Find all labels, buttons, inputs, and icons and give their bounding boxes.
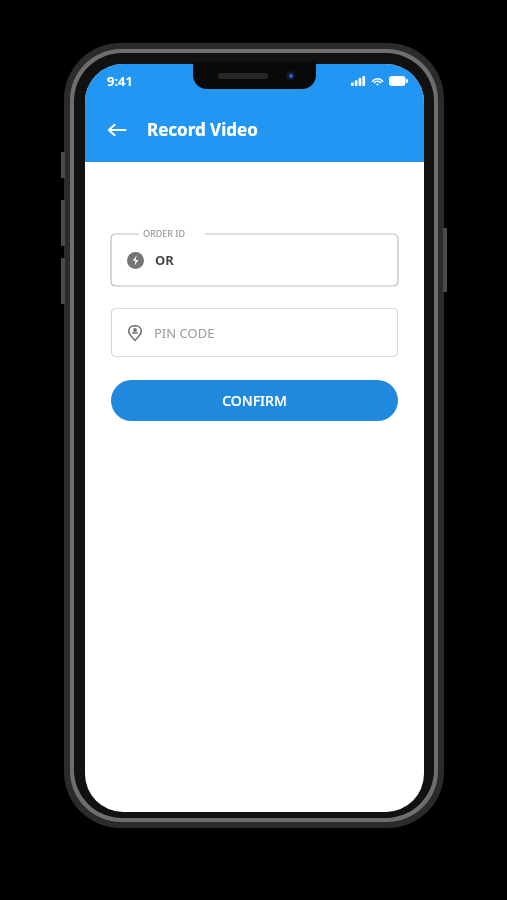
staticText: ORDER ID [143, 227, 186, 239]
staticText: OR [155, 251, 174, 269]
staticText: CONFIRM [222, 391, 287, 410]
button[interactable]: Back [95, 108, 139, 152]
staticText: PIN CODE [154, 324, 215, 342]
staticText: Record Video [147, 118, 258, 141]
button[interactable]: PIN CODE [111, 308, 398, 357]
button[interactable]: CONFIRM [111, 380, 398, 421]
button[interactable]: OR [111, 234, 398, 286]
staticText: 9:41 [107, 72, 133, 90]
